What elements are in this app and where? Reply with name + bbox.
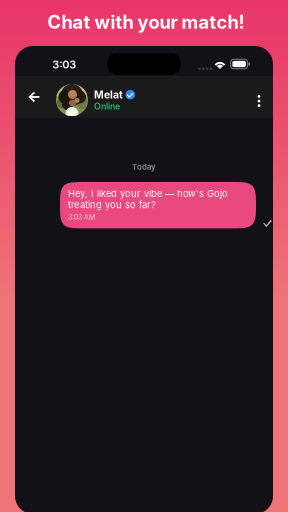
button[interactable]: Melat [56, 84, 135, 116]
staticText: Hey, I liked your vibe — how's Gojo trea… [68, 188, 228, 211]
staticText: Melat [94, 88, 123, 101]
button[interactable]: More options [251, 93, 267, 109]
staticText: 3:03 [52, 58, 76, 71]
staticText: 3:03 AM [68, 213, 95, 221]
staticText: Today [132, 162, 156, 172]
button[interactable]: Back [21, 84, 47, 110]
staticText: Chat with your match! [47, 11, 244, 33]
staticText: Online [94, 101, 120, 112]
